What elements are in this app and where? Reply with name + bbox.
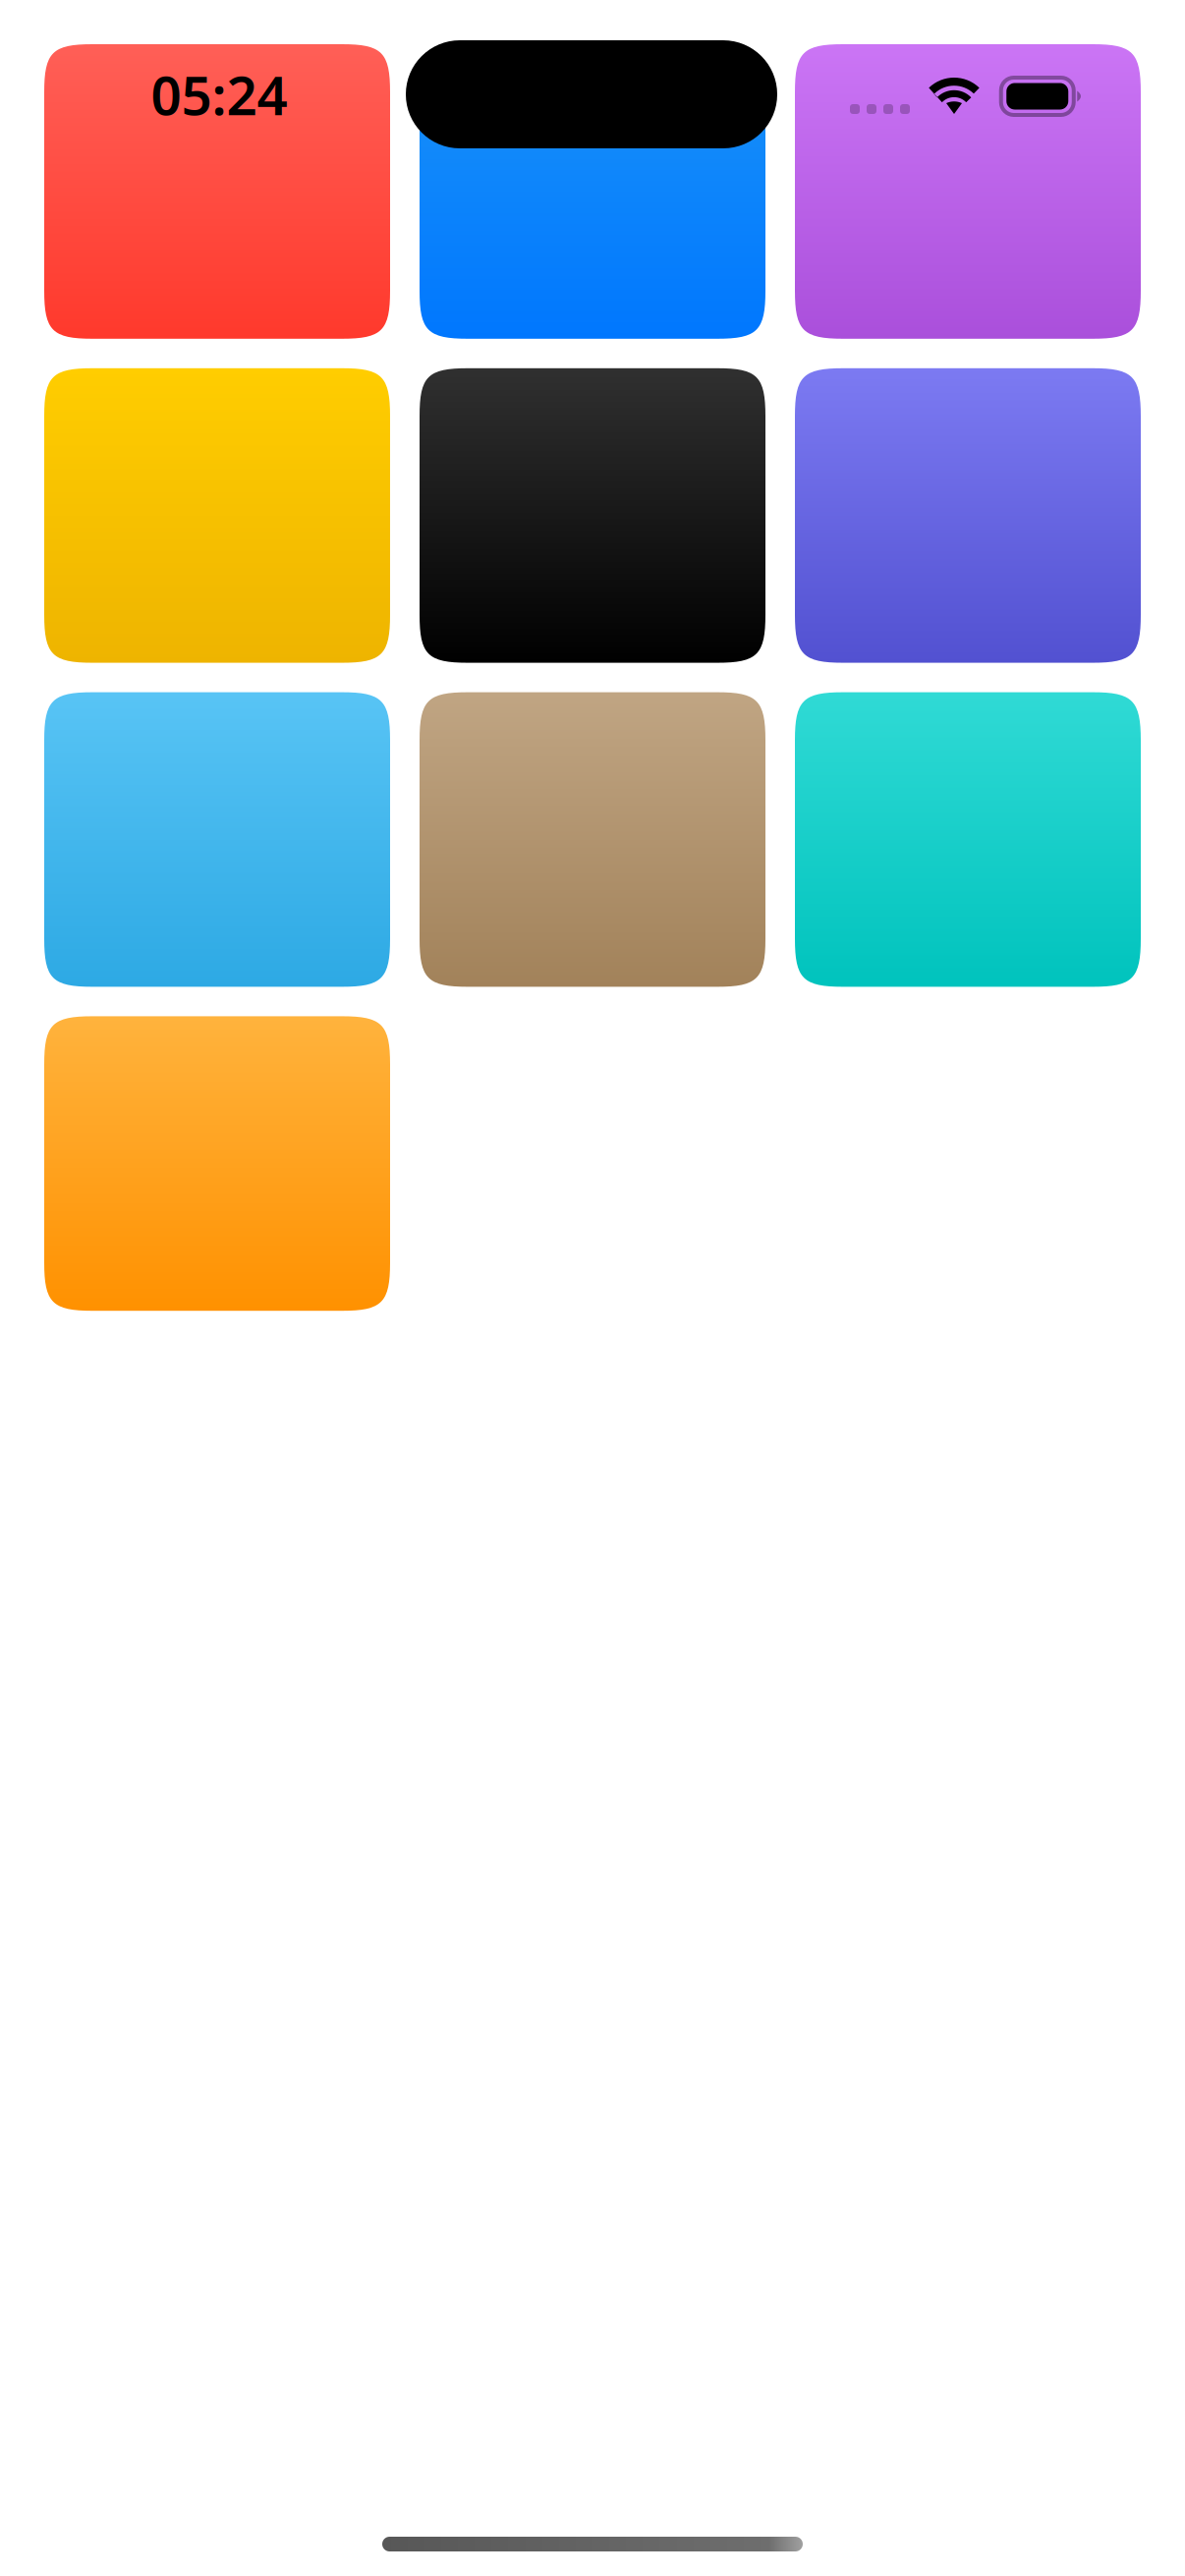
button[interactable]: Black [420, 368, 765, 663]
button[interactable]: Red [44, 44, 390, 339]
button[interactable]: Yellow [44, 368, 390, 663]
staticText: 05:24 [151, 59, 287, 130]
button[interactable]: Blue [420, 44, 765, 339]
button[interactable]: Indigo [795, 368, 1141, 663]
button[interactable]: Teal [795, 692, 1141, 987]
button[interactable]: Brown [420, 692, 765, 987]
button[interactable]: Orange [44, 1016, 390, 1311]
button[interactable]: Cyan [44, 692, 390, 987]
button[interactable]: Purple [795, 44, 1141, 339]
